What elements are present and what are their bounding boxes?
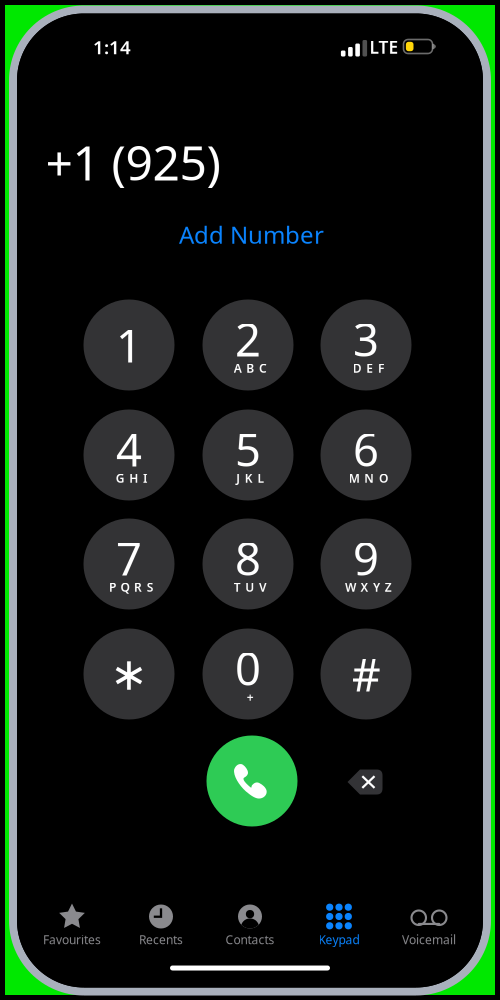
button[interactable]: Contacts bbox=[205, 893, 294, 951]
button[interactable]: Call bbox=[206, 735, 297, 826]
staticText: +1 (925) bbox=[45, 130, 220, 194]
staticText: Recents bbox=[139, 931, 183, 947]
button[interactable]: 8 bbox=[202, 518, 293, 609]
staticText: Keypad bbox=[318, 931, 359, 947]
staticText: Favourites bbox=[43, 931, 101, 947]
staticText: 8 bbox=[235, 528, 261, 588]
button[interactable]: 0 bbox=[202, 628, 293, 719]
staticText: 0 bbox=[235, 638, 261, 698]
button[interactable]: Voicemail bbox=[384, 893, 473, 951]
staticText: Voicemail bbox=[402, 931, 456, 947]
button[interactable]: 2 bbox=[202, 299, 293, 390]
staticText: 1 bbox=[116, 315, 142, 375]
button[interactable]: Add Number bbox=[156, 216, 346, 252]
staticText: WXYZ bbox=[345, 579, 392, 595]
staticText: DEF bbox=[353, 360, 384, 376]
staticText: # bbox=[351, 644, 380, 704]
button[interactable]: 5 bbox=[202, 409, 293, 500]
staticText: ABC bbox=[234, 360, 267, 376]
staticText: Add Number bbox=[179, 219, 324, 250]
staticText: 7 bbox=[116, 528, 142, 588]
button[interactable]: 1 bbox=[83, 299, 174, 390]
staticText: TUV bbox=[234, 579, 267, 595]
button[interactable]: Keypad bbox=[294, 893, 383, 951]
staticText: LTE bbox=[369, 35, 398, 58]
staticText: MNO bbox=[349, 470, 388, 486]
button[interactable]: Delete bbox=[347, 769, 382, 794]
staticText: 4 bbox=[116, 419, 142, 479]
button[interactable]: 4 bbox=[83, 409, 174, 500]
staticText: + bbox=[247, 689, 254, 705]
staticText: 5 bbox=[235, 419, 261, 479]
staticText: Contacts bbox=[225, 931, 274, 947]
button[interactable]: Favourites bbox=[27, 893, 116, 951]
button[interactable]: 9 bbox=[320, 518, 411, 609]
button[interactable]: Recents bbox=[116, 893, 205, 951]
staticText: PQRS bbox=[109, 579, 154, 595]
staticText: ∗ bbox=[110, 648, 148, 700]
staticText: 1:14 bbox=[93, 35, 131, 59]
staticText: 9 bbox=[353, 528, 379, 588]
button[interactable]: 7 bbox=[83, 518, 174, 609]
staticText: 3 bbox=[353, 309, 379, 369]
staticText: JKL bbox=[236, 470, 264, 486]
staticText: 2 bbox=[235, 309, 261, 369]
button[interactable]: # bbox=[320, 628, 411, 719]
button[interactable]: ∗ bbox=[83, 628, 174, 719]
staticText: 6 bbox=[353, 419, 379, 479]
button[interactable]: 6 bbox=[320, 409, 411, 500]
button[interactable]: 3 bbox=[320, 299, 411, 390]
staticText: GHI bbox=[116, 470, 147, 486]
